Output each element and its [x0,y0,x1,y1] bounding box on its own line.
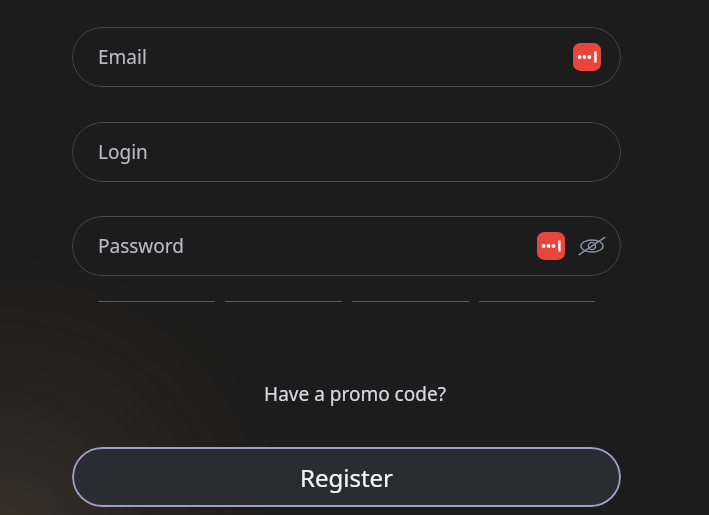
button[interactable]: Email [72,27,621,87]
staticText: Login [98,139,148,165]
button[interactable]: Register [72,447,621,507]
button[interactable]: Autofill password [573,43,601,71]
staticText: Have a promo code? [264,381,446,407]
staticText: Register [300,461,394,494]
staticText: Email [98,44,147,70]
staticText: Password [98,233,184,259]
button[interactable]: Login [72,122,621,182]
button[interactable]: Autofill password [537,232,565,260]
button[interactable]: Show password [577,231,607,261]
button[interactable]: Have a promo code? [0,380,709,408]
button[interactable]: Password [72,216,621,276]
